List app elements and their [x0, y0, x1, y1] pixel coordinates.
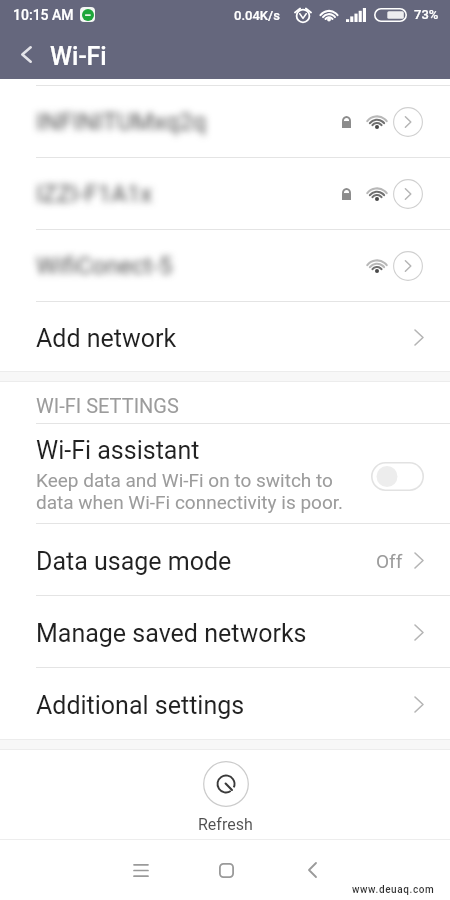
button[interactable]: Network details [393, 107, 423, 137]
button[interactable]: Navigate up [4, 30, 48, 79]
button[interactable]: Add network [0, 302, 450, 371]
button[interactable]: Data usage mode [0, 524, 450, 595]
staticText: Manage saved networks [36, 619, 307, 648]
staticText: Wi-Fi assistant [36, 436, 200, 465]
staticText: www.deuaq.com [352, 884, 435, 896]
button[interactable]: Wi-Fi assistant toggle [371, 462, 424, 491]
button[interactable]: Home [196, 840, 256, 900]
staticText: Keep data and Wi-Fi on to switch to data… [36, 469, 344, 514]
button[interactable]: INFINITUMxq2q [0, 86, 450, 157]
button[interactable]: IZZI-F1A1x [0, 158, 450, 229]
staticText: 0.04K/s [234, 8, 280, 23]
button[interactable]: Manage saved networks [0, 596, 450, 667]
button[interactable]: Wi-Fi assistant [0, 424, 450, 523]
staticText: Add network [36, 324, 177, 353]
staticText: Wi-Fi [50, 42, 107, 71]
staticText: Additional settings [36, 691, 245, 720]
button[interactable]: Back [282, 840, 342, 900]
button[interactable]: Network details [393, 179, 423, 209]
staticText: WI-FI SETTINGS [36, 394, 179, 417]
staticText: WifiConect-5 [36, 252, 173, 280]
staticText: INFINITUMxq2q [36, 108, 207, 136]
staticText: Refresh [198, 815, 253, 834]
staticText: Data usage mode [36, 547, 232, 576]
button[interactable]: Recent apps [111, 840, 171, 900]
button[interactable]: Additional settings [0, 668, 450, 739]
staticText: Off [376, 550, 403, 572]
staticText: 73% [414, 7, 439, 22]
staticText: IZZI-F1A1x [36, 180, 153, 208]
staticText: 10:15 AM [13, 7, 74, 23]
button[interactable]: WifiConect-5 [0, 230, 450, 301]
button[interactable]: Refresh [198, 750, 253, 834]
button[interactable]: Network details [393, 251, 423, 281]
